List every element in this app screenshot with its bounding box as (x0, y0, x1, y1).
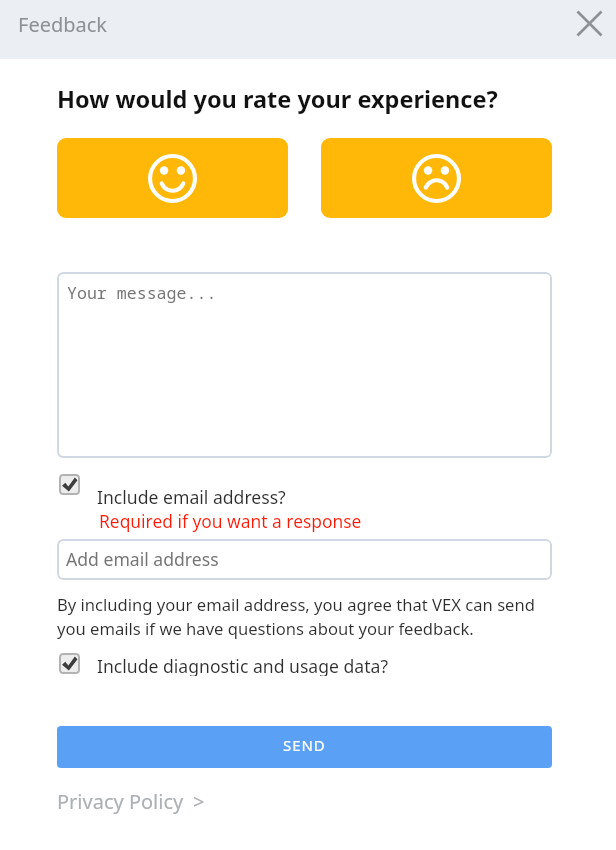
staticText: SEND (283, 735, 326, 755)
button[interactable]: Your message... (57, 272, 552, 458)
button[interactable]: Add email address (57, 539, 552, 580)
button[interactable]: SEND (57, 726, 552, 768)
staticText: > (193, 788, 205, 815)
staticText: Your message... (67, 281, 217, 304)
staticText: Privacy Policy (57, 788, 184, 815)
button[interactable]: Checkbox, checked (59, 474, 80, 495)
button[interactable]: Rate bad (321, 138, 552, 218)
staticText: How would you rate your experience? (57, 83, 498, 115)
button[interactable]: Close (570, 4, 608, 42)
staticText: Include diagnostic and usage data? (97, 654, 389, 676)
staticText: Feedback (18, 11, 108, 38)
button[interactable]: Checkbox, checked (59, 474, 287, 496)
staticText: By including your email address, you agr… (57, 593, 535, 639)
button[interactable]: Privacy Policy (57, 786, 205, 817)
button[interactable]: Checkbox, checked (59, 653, 80, 674)
button[interactable]: Rate good (57, 138, 288, 218)
staticText: Add email address (66, 547, 219, 571)
staticText: Include email address? (97, 485, 286, 507)
staticText: Required if you want a response (99, 509, 362, 533)
button[interactable]: Checkbox, checked (59, 653, 389, 675)
